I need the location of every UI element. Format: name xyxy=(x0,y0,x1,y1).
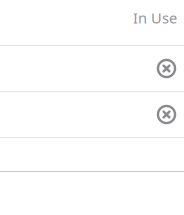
button[interactable]: Remove xyxy=(153,92,180,137)
button[interactable]: Remove xyxy=(153,46,180,91)
staticText: In Use xyxy=(133,8,177,27)
